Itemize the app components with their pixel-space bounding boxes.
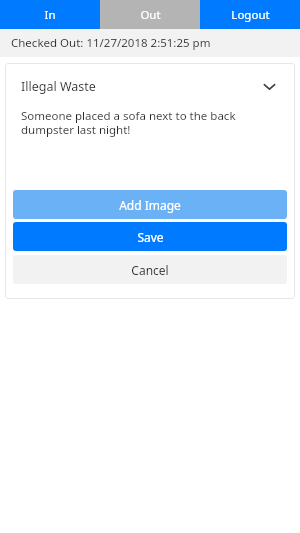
staticText: Illegal Waste	[21, 78, 96, 95]
staticText: Someone placed a sofa next to the back d…	[21, 108, 279, 138]
button[interactable]: Cancel	[13, 255, 287, 284]
button[interactable]: Logout	[200, 0, 300, 29]
staticText: Logout	[231, 7, 270, 23]
staticText: Cancel	[131, 262, 169, 278]
button[interactable]: Out	[100, 0, 200, 29]
button[interactable]: In	[0, 0, 100, 29]
staticText: Checked Out: 11/27/2018 2:51:25 pm	[11, 35, 211, 51]
staticText: In	[44, 7, 56, 23]
other: Expand category	[259, 76, 279, 96]
staticText: Out	[140, 7, 161, 23]
staticText: Add Image	[119, 197, 181, 213]
button[interactable]: Add Image	[13, 190, 287, 219]
button[interactable]: Illegal Waste	[13, 71, 287, 101]
button[interactable]: Save	[13, 222, 287, 251]
staticText: Save	[137, 229, 164, 245]
